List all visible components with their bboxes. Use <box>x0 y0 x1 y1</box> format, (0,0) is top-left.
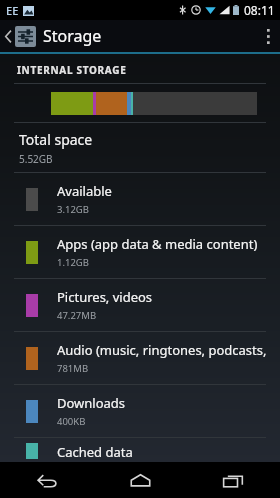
staticText: Storage <box>43 25 102 47</box>
staticText: 400KB <box>57 415 86 428</box>
staticText: Total space <box>19 130 93 149</box>
button[interactable]: Audio (music, ringtones, podcasts, <box>0 332 280 384</box>
staticText: EE <box>6 3 19 18</box>
staticText: 08:11 <box>244 2 275 18</box>
staticText: Apps (app data & media content) <box>57 235 258 253</box>
button[interactable]: Home <box>94 462 187 498</box>
button[interactable]: More options <box>257 24 280 49</box>
staticText: 1.12GB <box>57 256 89 269</box>
button[interactable]: Pictures, videos <box>0 279 280 331</box>
staticText: 781MB <box>57 362 89 375</box>
button[interactable]: Downloads <box>0 385 280 437</box>
staticText: Downloads <box>57 394 126 412</box>
staticText: Cached data <box>57 443 133 461</box>
staticText: 47.27MB <box>57 309 97 322</box>
button[interactable]: Total space <box>0 123 280 172</box>
button[interactable]: Apps (app data & media content) <box>0 226 280 278</box>
staticText: INTERNAL STORAGE <box>17 63 127 77</box>
staticText: Available <box>57 182 112 200</box>
button[interactable]: Recent apps <box>187 462 280 498</box>
button[interactable]: Navigate up <box>0 21 108 51</box>
staticText: Pictures, videos <box>57 288 153 306</box>
staticText: 3.12GB <box>57 203 89 216</box>
button[interactable]: Available <box>0 173 280 225</box>
button[interactable]: Back <box>0 462 94 498</box>
staticText: 5.52GB <box>19 152 53 166</box>
button[interactable]: Cached data <box>0 438 280 462</box>
staticText: Audio (music, ringtones, podcasts, <box>57 341 267 359</box>
